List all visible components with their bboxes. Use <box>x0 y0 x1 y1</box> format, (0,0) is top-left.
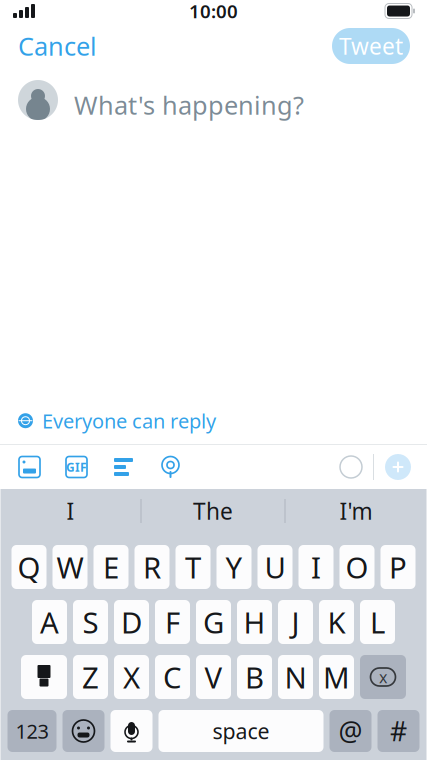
button[interactable]: F <box>155 600 190 644</box>
staticText: 10:00 <box>189 0 238 23</box>
button[interactable]: I <box>0 490 140 532</box>
staticText: 123 <box>15 718 48 744</box>
button[interactable]: Delete <box>360 655 406 699</box>
button[interactable]: Z <box>73 655 108 699</box>
button[interactable]: The <box>141 490 284 532</box>
staticText: C <box>163 657 182 696</box>
button[interactable]: R <box>134 545 169 589</box>
button[interactable]: T <box>175 545 210 589</box>
staticText: Q <box>17 547 40 586</box>
button[interactable]: U <box>257 545 292 589</box>
button[interactable]: Add GIF <box>53 445 100 489</box>
button[interactable]: B <box>237 655 272 699</box>
button[interactable]: D <box>114 600 149 644</box>
staticText: Tweet <box>339 31 403 61</box>
staticText: A <box>40 602 59 641</box>
button[interactable]: Everyone can reply <box>0 397 228 444</box>
button[interactable]: Tweet <box>332 28 410 64</box>
button[interactable]: Q <box>11 545 46 589</box>
button[interactable]: X <box>114 655 149 699</box>
button[interactable]: Add photo <box>6 445 53 489</box>
staticText: GIF <box>66 459 87 475</box>
button[interactable]: S <box>73 600 108 644</box>
button[interactable]: Add location <box>147 445 194 489</box>
button[interactable]: J <box>278 600 313 644</box>
staticText: O <box>345 547 368 586</box>
button[interactable]: Add another tweet <box>374 445 422 489</box>
button[interactable]: K <box>319 600 354 644</box>
button[interactable]: space <box>158 710 323 752</box>
button[interactable]: A <box>32 600 67 644</box>
staticText: space <box>212 717 269 745</box>
button[interactable]: L <box>360 600 395 644</box>
staticText: # <box>390 713 407 749</box>
staticText: B <box>245 657 264 696</box>
button[interactable]: Character count <box>329 445 373 489</box>
staticText: S <box>82 602 98 641</box>
button[interactable]: I <box>298 545 333 589</box>
staticText: Cancel <box>18 29 97 63</box>
staticText: W <box>56 547 83 586</box>
staticText: What's happening? <box>74 88 304 122</box>
staticText: K <box>327 602 345 641</box>
button[interactable]: N <box>278 655 313 699</box>
button[interactable]: Shift <box>21 655 67 699</box>
staticText: H <box>243 602 265 641</box>
button[interactable]: Y <box>216 545 251 589</box>
button[interactable]: Emoji <box>62 710 104 752</box>
button[interactable]: G <box>196 600 231 644</box>
staticText: @ <box>338 713 362 749</box>
staticText: Everyone can reply <box>42 407 216 434</box>
staticText: I <box>66 496 74 526</box>
button[interactable]: P <box>380 545 415 589</box>
button[interactable]: H <box>237 600 272 644</box>
staticText: R <box>143 547 161 586</box>
button[interactable]: W <box>52 545 87 589</box>
staticText: L <box>370 602 385 641</box>
button[interactable]: V <box>196 655 231 699</box>
button[interactable]: Dictate <box>110 710 152 752</box>
staticText: M <box>323 657 350 696</box>
staticText: G <box>203 602 224 641</box>
button[interactable]: Cancel <box>0 20 115 72</box>
button[interactable]: O <box>339 545 374 589</box>
staticText: D <box>121 602 142 641</box>
button[interactable]: E <box>93 545 128 589</box>
staticText: E <box>103 547 119 586</box>
staticText: Z <box>82 657 99 696</box>
staticText: x <box>379 666 387 688</box>
button[interactable]: @ <box>329 710 371 752</box>
button[interactable]: I'm <box>285 490 426 532</box>
staticText: F <box>165 602 180 641</box>
staticText: P <box>389 547 407 586</box>
staticText: I'm <box>339 496 372 526</box>
staticText: Y <box>225 547 242 586</box>
staticText: J <box>291 602 299 641</box>
button[interactable]: C <box>155 655 190 699</box>
staticText: N <box>284 657 306 696</box>
staticText: The <box>193 496 233 526</box>
button[interactable]: M <box>319 655 354 699</box>
staticText: V <box>204 657 222 696</box>
button[interactable]: 123 <box>7 710 56 752</box>
staticText: I <box>311 547 321 586</box>
staticText: X <box>123 657 140 696</box>
staticText: T <box>185 547 201 586</box>
staticText: U <box>264 547 285 586</box>
button[interactable]: # <box>377 710 419 752</box>
button[interactable]: Add poll <box>100 445 147 489</box>
